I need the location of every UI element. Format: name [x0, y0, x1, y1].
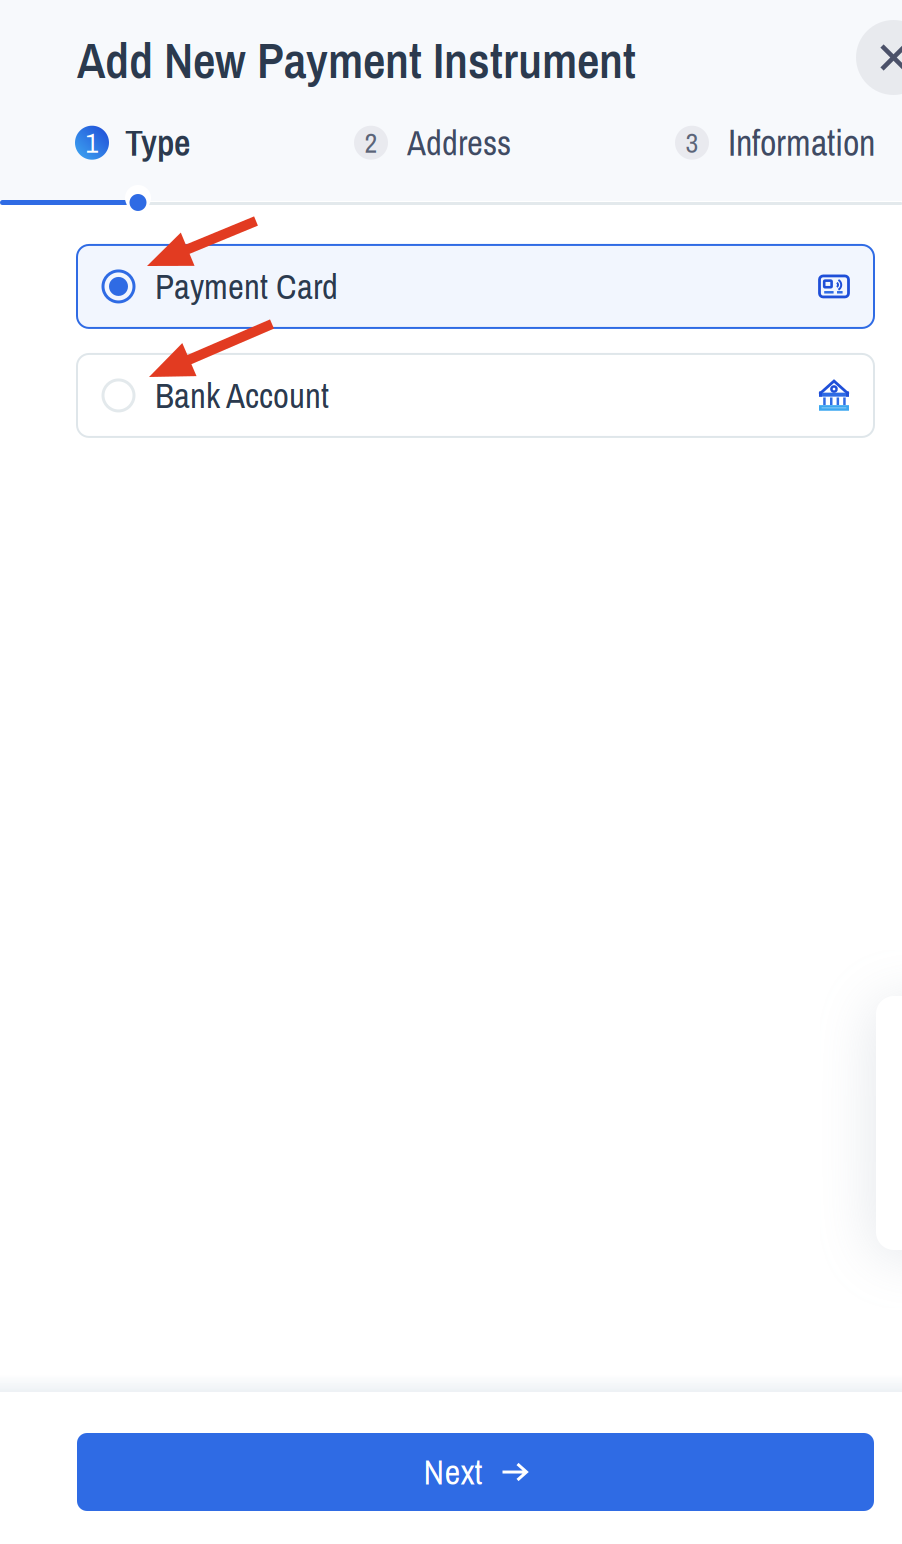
staticText: Type — [125, 118, 190, 167]
button[interactable]: Payment Card — [77, 245, 874, 328]
button[interactable]: Close — [856, 20, 902, 95]
staticText: 3 — [685, 124, 698, 161]
staticText: Next — [423, 1449, 482, 1495]
button[interactable]: Next — [77, 1433, 874, 1511]
staticText: 1 — [85, 124, 98, 161]
staticText: Payment Card — [155, 263, 338, 310]
button[interactable]: Bank Account — [77, 354, 874, 437]
staticText: Bank Account — [155, 372, 329, 419]
staticText: Information — [728, 118, 875, 167]
staticText: 2 — [364, 124, 377, 161]
staticText: Add New Payment Instrument — [77, 27, 636, 93]
staticText: Address — [407, 119, 511, 166]
